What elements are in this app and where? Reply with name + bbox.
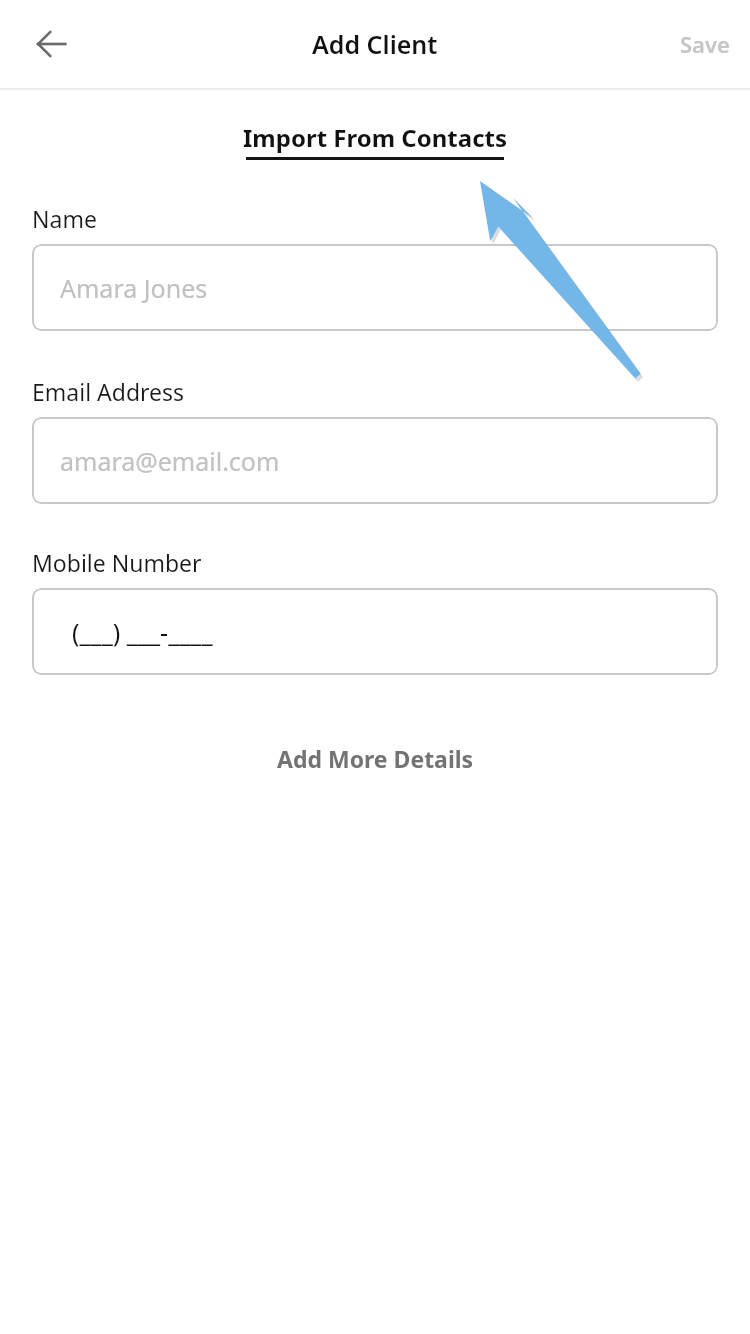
staticText: Add Client <box>312 27 438 61</box>
button[interactable]: Back <box>19 12 83 76</box>
button[interactable]: Save <box>660 15 750 73</box>
staticText: Add More Details <box>277 743 474 774</box>
button[interactable]: amara@email.com <box>32 417 718 504</box>
staticText: Mobile Number <box>32 547 202 578</box>
button[interactable]: Import From Contacts <box>243 121 507 160</box>
button[interactable]: Add More Details <box>253 735 498 782</box>
staticText: amara@email.com <box>60 444 280 478</box>
staticText: Name <box>32 203 97 234</box>
staticText: Amara Jones <box>60 271 208 305</box>
staticText: Email Address <box>32 376 185 407</box>
staticText: Save <box>680 29 730 59</box>
staticText: Import From Contacts <box>243 121 507 154</box>
button[interactable]: Amara Jones <box>32 244 718 331</box>
staticText: (___) ___-____ <box>72 615 213 649</box>
button[interactable]: (___) ___-____ <box>32 588 718 675</box>
